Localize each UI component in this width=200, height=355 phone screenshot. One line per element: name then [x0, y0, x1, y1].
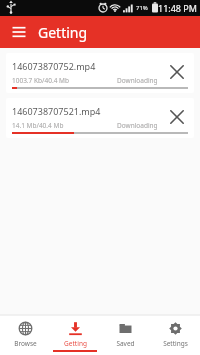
button[interactable]: 146073870752.mp4: [6, 53, 194, 93]
staticText: Downloading: [117, 76, 158, 85]
staticText: 11:48 PM: [158, 2, 197, 14]
button[interactable]: Saved: [100, 315, 150, 355]
staticText: Settings: [163, 339, 188, 348]
staticText: Getting: [38, 23, 88, 42]
staticText: Saved: [116, 339, 135, 348]
staticText: 71%: [136, 4, 148, 12]
button[interactable]: Settings: [150, 315, 200, 355]
staticText: 14.1 Mb/40.4 Mb: [12, 121, 64, 130]
button[interactable]: Open navigation menu: [8, 21, 30, 43]
button[interactable]: Cancel download: [164, 104, 190, 130]
button[interactable]: Getting: [50, 315, 100, 355]
staticText: Browse: [14, 339, 37, 348]
staticText: 1460738707521.mp4: [12, 105, 101, 117]
staticText: 1003.7 Kb/40.4 Mb: [12, 76, 69, 85]
button[interactable]: Cancel download: [164, 59, 190, 85]
staticText: Downloading: [117, 121, 158, 130]
button[interactable]: 1460738707521.mp4: [6, 98, 194, 138]
staticText: Getting: [64, 339, 87, 348]
staticText: 146073870752.mp4: [12, 60, 96, 72]
button[interactable]: Browse: [0, 315, 50, 355]
